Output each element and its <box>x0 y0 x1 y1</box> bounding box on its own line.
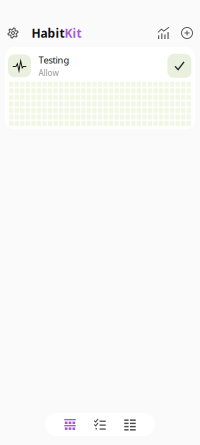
button[interactable]: List view <box>115 413 145 436</box>
staticText: Testing <box>38 54 69 66</box>
button[interactable]: Add habit <box>178 24 195 41</box>
button[interactable]: Settings <box>4 24 21 41</box>
button[interactable]: Mark complete <box>167 54 191 78</box>
button[interactable]: Checklist view <box>85 413 115 436</box>
staticText: Kit <box>64 25 81 41</box>
staticText: Habit <box>31 25 64 41</box>
staticText: Allow <box>38 67 58 78</box>
button[interactable]: Grid view <box>55 413 85 436</box>
button[interactable]: Statistics <box>154 24 172 42</box>
